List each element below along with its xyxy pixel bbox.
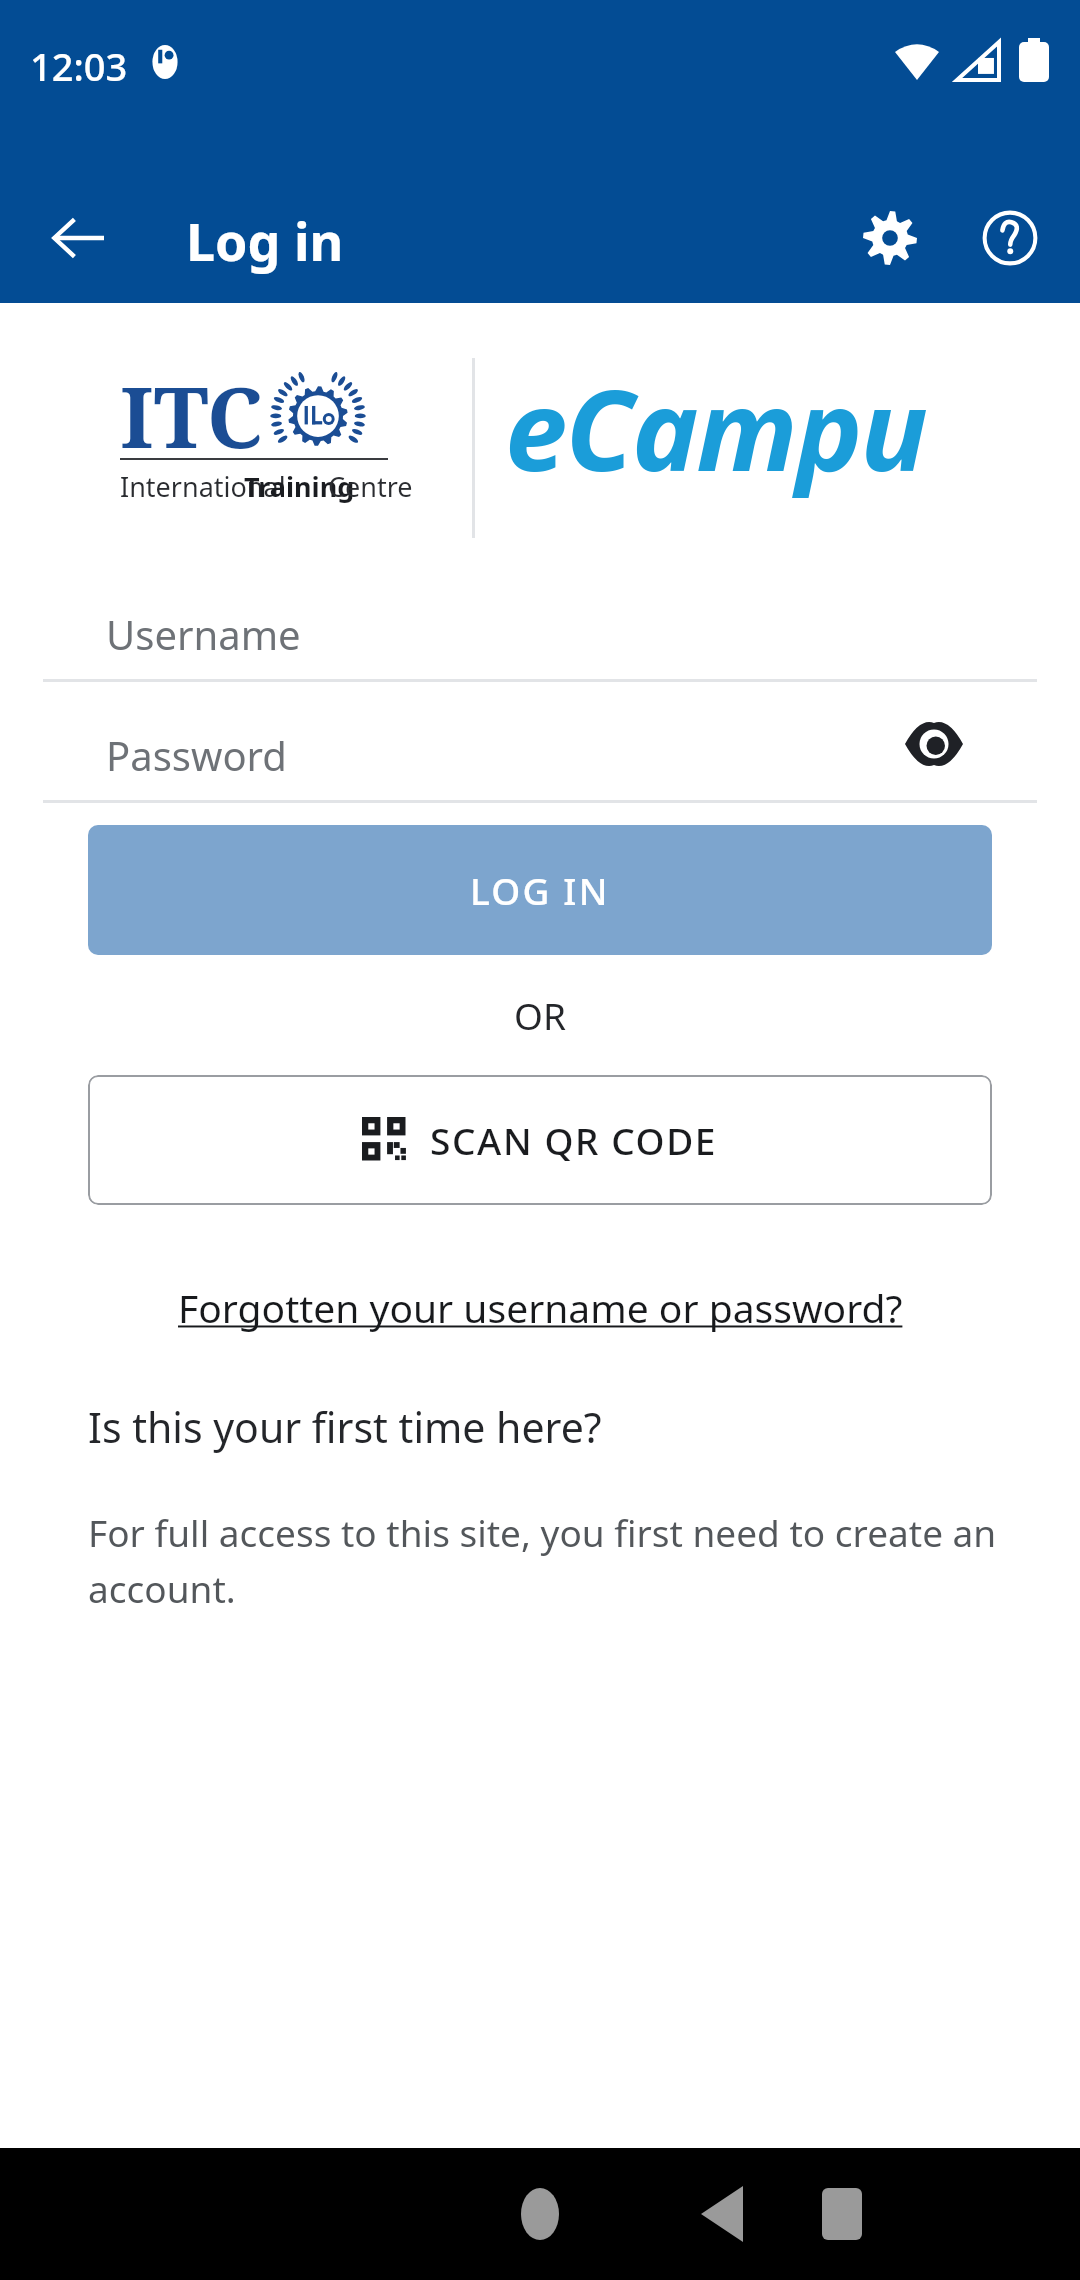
button[interactable]: Recent apps	[786, 2148, 898, 2280]
button[interactable]: Help	[962, 190, 1058, 286]
staticText: Centre	[328, 468, 413, 505]
staticText: Username	[106, 607, 301, 661]
button[interactable]: LOG IN	[88, 825, 992, 955]
button[interactable]: Forgotten your username or password?	[0, 1263, 1080, 1351]
staticText: International	[120, 468, 293, 505]
button[interactable]: Home	[484, 2148, 596, 2280]
staticText: Is this your first time here?	[88, 1399, 602, 1455]
staticText: LOG IN	[470, 865, 610, 915]
button[interactable]: Username	[0, 561, 1080, 682]
staticText: 12:03	[30, 40, 128, 92]
staticText: OR	[514, 990, 566, 1040]
button[interactable]: SCAN QR CODE	[88, 1075, 992, 1205]
staticText: Training	[244, 468, 362, 505]
staticText: ITC	[120, 358, 264, 472]
staticText: eCampus	[505, 351, 960, 541]
button[interactable]: Back	[182, 2148, 1080, 2280]
staticText: Forgotten your username or password?	[178, 1281, 903, 1334]
button[interactable]: Settings	[842, 190, 938, 286]
staticText: SCAN QR CODE	[430, 1115, 718, 1165]
staticText: Password	[106, 728, 287, 782]
button[interactable]: Show password	[898, 708, 970, 780]
button[interactable]: Back	[30, 190, 126, 286]
staticText: For full access to this site, you first …	[88, 1507, 1024, 1614]
staticText: Log in	[186, 205, 344, 276]
button[interactable]: Password	[0, 682, 1080, 803]
